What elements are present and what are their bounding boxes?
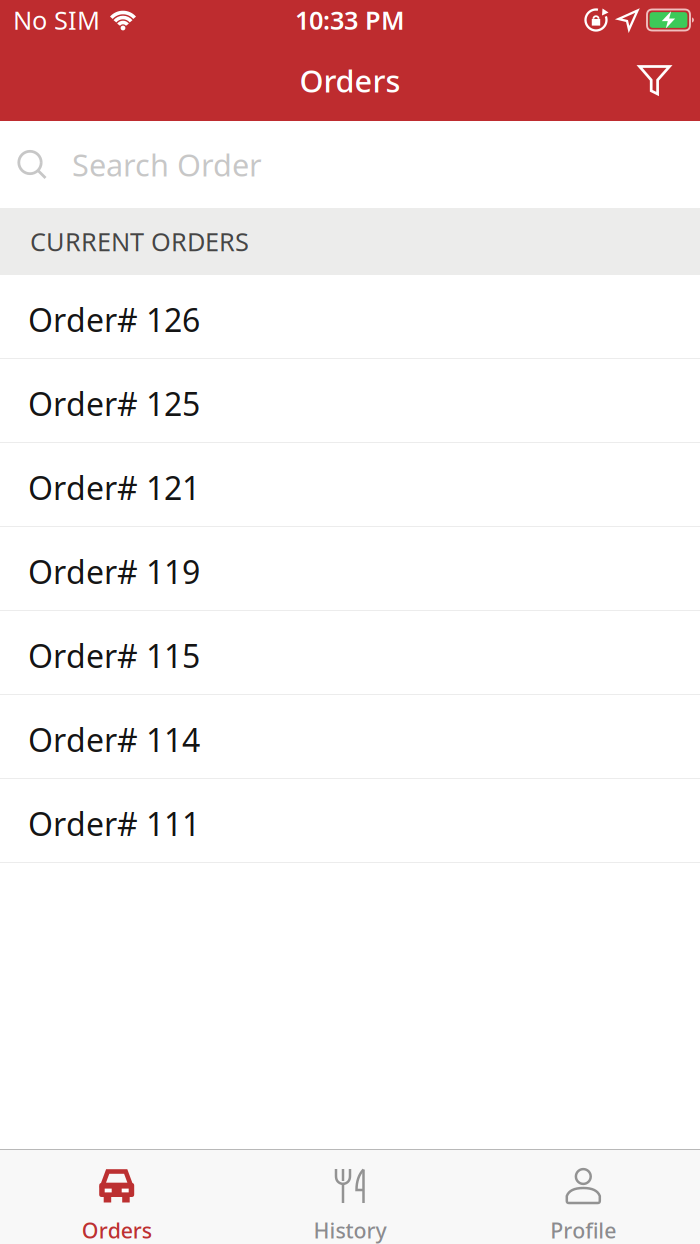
staticText: Order# 121 (28, 466, 200, 509)
staticText: Search Order (72, 144, 262, 185)
staticText: Order# 111 (28, 802, 200, 845)
button[interactable]: Order# 119 (0, 527, 700, 611)
staticText: Profile (550, 1216, 616, 1244)
button[interactable]: Order# 114 (0, 695, 700, 779)
staticText: Orders (299, 60, 400, 101)
staticText: Order# 125 (28, 382, 200, 425)
button[interactable]: Order# 126 (0, 275, 700, 359)
button[interactable]: History (233, 1150, 467, 1244)
button[interactable]: Filter (638, 65, 700, 96)
button[interactable]: Search Order (0, 121, 700, 208)
staticText: CURRENT ORDERS (30, 225, 249, 258)
button[interactable]: Order# 115 (0, 611, 700, 695)
staticText: Orders (82, 1216, 152, 1244)
button[interactable]: Order# 111 (0, 779, 700, 863)
staticText: Order# 126 (28, 298, 200, 341)
button[interactable]: Profile (467, 1150, 700, 1244)
staticText: Order# 114 (28, 718, 200, 761)
staticText: History (313, 1216, 386, 1244)
button[interactable]: Order# 125 (0, 359, 700, 443)
staticText: Order# 119 (28, 550, 200, 593)
staticText: Order# 115 (28, 634, 200, 677)
button[interactable]: Orders (0, 1150, 233, 1244)
staticText: 10:33 PM (295, 3, 405, 37)
staticText: No SIM (13, 3, 100, 37)
button[interactable]: Order# 121 (0, 443, 700, 527)
